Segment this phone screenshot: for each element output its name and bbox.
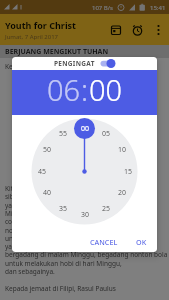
- button[interactable]: [152, 21, 164, 39]
- staticText: untuk jalan-jalan ke mal, tidur: [5, 234, 97, 243]
- staticText: 00: [89, 70, 123, 107]
- staticText: sibuk mengisi hari Minggu dengan: [5, 192, 112, 201]
- staticText: yang menyenangkan diri sendiri,: [5, 201, 106, 210]
- staticText: Kejadian 2:1-3 mencatat bahwa Allah: [5, 62, 118, 71]
- staticText: 05: [102, 129, 111, 139]
- staticText: Jumat, 7 April 2017: [5, 33, 59, 41]
- staticText: 45: [38, 167, 47, 177]
- staticText: CANCEL: [90, 237, 118, 246]
- button[interactable]: [108, 22, 124, 38]
- staticText: 55: [59, 129, 68, 139]
- staticText: contohnya menonton film kesukaan,: [5, 217, 117, 226]
- button[interactable]: 00: [77, 124, 93, 134]
- button[interactable]: PENGINGAT: [12, 57, 157, 70]
- staticText: PENGINGAT: [54, 59, 95, 68]
- staticText: 15: [124, 167, 133, 177]
- staticText: bergadang di malam Minggu, begadang nont…: [5, 250, 168, 259]
- staticText: 00: [81, 124, 90, 134]
- staticText: OK: [136, 237, 147, 246]
- button[interactable]: OK: [130, 233, 153, 250]
- staticText: dan sebagainya.: [5, 267, 55, 276]
- button[interactable]: [129, 22, 145, 38]
- staticText: 10: [118, 145, 127, 155]
- staticText: Kepada jemaat di Filipi, Rasul Paulus: [5, 284, 116, 293]
- staticText: untuk melakukan hobi di hari Minggu,: [5, 259, 122, 268]
- staticText: Kita yang muda sering tergoda: [5, 184, 100, 193]
- staticText: 06: [47, 70, 81, 107]
- staticText: 107 B/s: [92, 4, 113, 12]
- staticText: Youth for Christ: [5, 19, 76, 31]
- staticText: 15:41: [150, 4, 166, 12]
- staticText: 30: [81, 210, 90, 220]
- staticText: :: [81, 70, 89, 107]
- staticText: 25: [102, 204, 111, 214]
- staticText: yang panjang sepanjang pagi karena: [5, 242, 118, 251]
- staticText: 35: [59, 204, 68, 214]
- staticText: Misalnya bermain game seharian,: [5, 209, 109, 218]
- staticText: BERJUANG MENGIKUT TUHAN: [5, 47, 109, 57]
- staticText: 40: [43, 188, 52, 198]
- staticText: nongkrong bersama teman sampai: [5, 226, 113, 235]
- staticText: 20: [118, 188, 127, 198]
- button[interactable]: CANCEL: [84, 233, 124, 250]
- staticText: 50: [43, 145, 52, 155]
